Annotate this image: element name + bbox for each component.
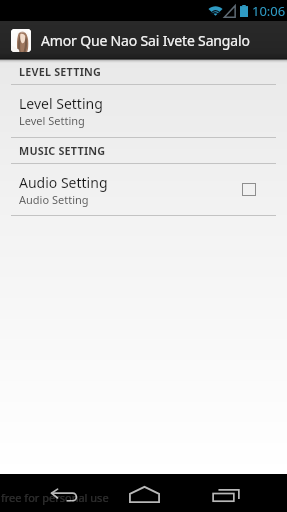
staticText: Level Setting (19, 94, 103, 113)
button[interactable]: Level Setting (0, 85, 287, 137)
button[interactable]: Audio Setting (0, 164, 287, 215)
staticText: Audio Setting (19, 192, 89, 207)
button[interactable]: Recent apps (202, 476, 250, 512)
staticText: Amor Que Nao Sai Ivete Sangalo (41, 31, 250, 50)
staticText: Level Setting (19, 113, 85, 128)
button[interactable]: Home (120, 476, 168, 512)
staticText: Audio Setting (19, 173, 108, 192)
staticText: LEVEL SETTING (19, 64, 102, 79)
button[interactable]: Back (40, 478, 88, 512)
staticText: MUSIC SETTING (19, 143, 106, 158)
staticText: 10:06 (252, 2, 286, 20)
staticText: free for personal use (1, 490, 109, 505)
